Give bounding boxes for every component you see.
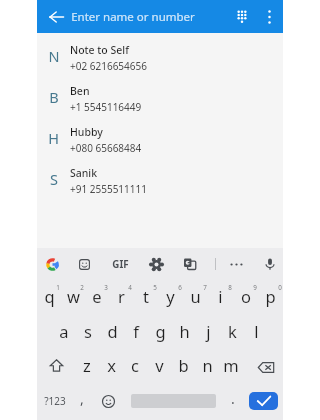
- staticText: Sanik: [70, 166, 98, 180]
- staticText: S: [50, 169, 58, 189]
- staticText: 5: [153, 283, 157, 292]
- staticText: a: [59, 320, 69, 342]
- staticText: q: [44, 285, 55, 307]
- staticText: 3: [104, 283, 108, 292]
- staticText: j: [206, 320, 211, 342]
- staticText: m: [223, 354, 239, 376]
- button[interactable]: Emoji: [91, 382, 126, 420]
- button[interactable]: 6: [158, 280, 183, 314]
- button[interactable]: 2: [61, 280, 85, 314]
- button[interactable]: H: [37, 119, 283, 160]
- staticText: +1 5545116449: [70, 100, 142, 114]
- button[interactable]: 7: [183, 280, 208, 314]
- staticText: s: [84, 320, 92, 342]
- button[interactable]: d: [100, 314, 124, 348]
- button[interactable]: Translate: [179, 248, 201, 280]
- button[interactable]: 4: [109, 280, 133, 314]
- staticText: 0: [278, 283, 282, 292]
- button[interactable]: N: [37, 37, 283, 78]
- staticText: Hubby: [70, 125, 103, 139]
- button[interactable]: 5: [133, 280, 158, 314]
- staticText: Note to Self: [70, 43, 129, 57]
- button[interactable]: S: [37, 160, 283, 201]
- button[interactable]: Back: [41, 1, 72, 32]
- staticText: p: [265, 285, 276, 307]
- button[interactable]: j: [196, 314, 220, 348]
- staticText: n: [202, 354, 213, 376]
- staticText: 7: [203, 283, 207, 292]
- button[interactable]: 8: [208, 280, 233, 314]
- staticText: 8: [228, 283, 232, 292]
- staticText: 6: [178, 283, 182, 292]
- staticText: N: [48, 46, 60, 66]
- button[interactable]: Google: [41, 248, 63, 280]
- button[interactable]: a: [52, 314, 76, 348]
- button[interactable]: c: [123, 348, 147, 382]
- button[interactable]: 3: [85, 280, 109, 314]
- staticText: +91 2555511111: [70, 182, 147, 196]
- button[interactable]: 9: [233, 280, 258, 314]
- button[interactable]: v: [147, 348, 171, 382]
- button[interactable]: k: [220, 314, 244, 348]
- button[interactable]: s: [76, 314, 100, 348]
- button[interactable]: ,: [73, 382, 91, 420]
- staticText: Ben: [70, 84, 90, 98]
- staticText: d: [107, 320, 118, 342]
- staticText: GIF: [112, 258, 129, 271]
- button[interactable]: More: [225, 248, 247, 280]
- button[interactable]: x: [99, 348, 123, 382]
- staticText: b: [178, 354, 189, 376]
- staticText: k: [228, 320, 237, 342]
- staticText: 1: [56, 283, 60, 292]
- staticText: l: [254, 320, 259, 342]
- button[interactable]: z: [75, 348, 99, 382]
- button[interactable]: b: [171, 348, 195, 382]
- button[interactable]: l: [244, 314, 268, 348]
- staticText: c: [131, 354, 139, 376]
- button[interactable]: m: [219, 348, 243, 382]
- staticText: Enter name or number: [71, 9, 195, 25]
- button[interactable]: Enter: [249, 392, 278, 410]
- button[interactable]: Stickers: [73, 248, 95, 280]
- staticText: z: [83, 354, 91, 376]
- button[interactable]: ?123: [37, 382, 73, 420]
- staticText: h: [179, 320, 190, 342]
- button[interactable]: B: [37, 78, 283, 119]
- button[interactable]: Shift: [37, 348, 75, 382]
- staticText: +02 6216654656: [70, 59, 147, 73]
- staticText: y: [166, 285, 175, 307]
- staticText: ,: [80, 389, 84, 408]
- button[interactable]: h: [172, 314, 196, 348]
- staticText: o: [241, 285, 251, 307]
- staticText: H: [48, 128, 59, 148]
- staticText: v: [155, 354, 164, 376]
- staticText: 4: [128, 283, 132, 292]
- staticText: i: [218, 285, 223, 307]
- button[interactable]: Dialpad: [228, 3, 256, 31]
- staticText: 2: [80, 283, 84, 292]
- staticText: r: [118, 285, 125, 307]
- staticText: w: [67, 285, 80, 307]
- staticText: e: [92, 285, 102, 307]
- staticText: ?123: [44, 394, 66, 408]
- staticText: x: [107, 354, 116, 376]
- button[interactable]: Voice input: [259, 248, 281, 280]
- staticText: +080 65668484: [70, 141, 142, 155]
- staticText: t: [143, 285, 149, 307]
- button[interactable]: 1: [37, 280, 61, 314]
- button[interactable]: GIF: [107, 248, 133, 280]
- button[interactable]: More options: [256, 4, 282, 30]
- staticText: u: [190, 285, 201, 307]
- button[interactable]: 0: [258, 280, 283, 314]
- button[interactable]: g: [148, 314, 172, 348]
- button[interactable]: f: [124, 314, 148, 348]
- button[interactable]: Backspace: [243, 348, 282, 382]
- button[interactable]: .: [221, 382, 244, 420]
- staticText: f: [133, 320, 139, 342]
- button[interactable]: n: [195, 348, 219, 382]
- staticText: .: [231, 389, 235, 408]
- staticText: g: [155, 320, 166, 342]
- staticText: B: [49, 87, 59, 107]
- button[interactable]: Settings: [145, 248, 167, 280]
